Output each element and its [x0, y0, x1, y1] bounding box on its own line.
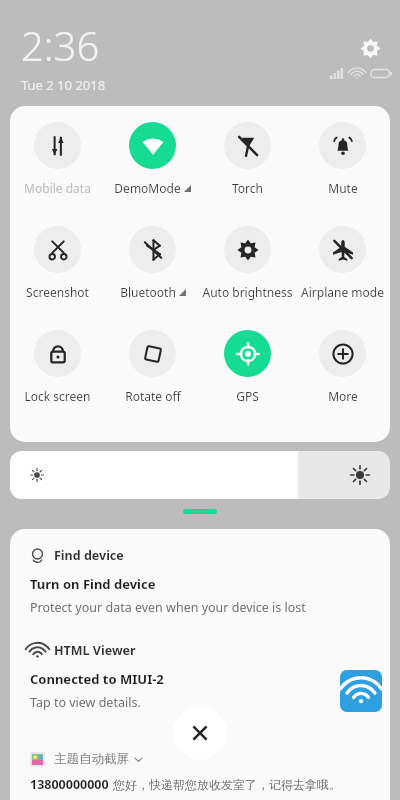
staticText: Connected to MIUI-2	[30, 670, 164, 688]
button[interactable]: Airplane mode	[295, 226, 390, 330]
staticText: 13800000000	[30, 776, 109, 793]
button[interactable]: Brightness	[10, 451, 390, 499]
staticText: 您好，快递帮您放收发室了，记得去拿哦。	[113, 777, 341, 792]
staticText: GPS	[236, 388, 259, 404]
staticText: Mobile data	[24, 180, 91, 196]
staticText: Turn on Find device	[30, 575, 156, 593]
staticText: DemoMode	[114, 180, 181, 196]
button[interactable]: Torch	[200, 122, 295, 226]
button[interactable]: Find device	[10, 529, 390, 616]
staticText: Find device	[54, 547, 124, 564]
staticText: Protect your data even when your device …	[30, 599, 306, 616]
staticText: Tap to view details.	[30, 694, 141, 711]
staticText: Torch	[232, 180, 263, 196]
button[interactable]: DemoMode	[105, 122, 200, 226]
button[interactable]: Mobile data	[10, 122, 105, 226]
button[interactable]: Screenshot	[10, 226, 105, 330]
staticText: More	[328, 388, 358, 404]
staticText: 主题自动截屏	[54, 751, 129, 767]
button[interactable]: Rotate off	[105, 330, 200, 434]
staticText: HTML Viewer	[54, 642, 136, 659]
button[interactable]: More	[295, 330, 390, 434]
staticText: Screenshot	[26, 284, 89, 300]
staticText: Auto brightness	[202, 284, 293, 300]
button[interactable]: Settings	[352, 30, 388, 66]
button[interactable]: GPS	[200, 330, 295, 434]
staticText: Bluetooth	[120, 284, 176, 300]
staticText: Lock screen	[24, 388, 91, 404]
button[interactable]: Clear all notifications	[173, 706, 227, 760]
button[interactable]: Bluetooth	[105, 226, 200, 330]
button[interactable]: HTML Viewer	[10, 642, 390, 711]
button[interactable]: Lock screen	[10, 330, 105, 434]
staticText: Airplane mode	[301, 284, 384, 300]
button[interactable]: Mute	[295, 122, 390, 226]
button[interactable]: 主题自动截屏	[10, 751, 390, 793]
button[interactable]: Auto brightness	[200, 226, 295, 330]
staticText: 2:36	[21, 18, 100, 72]
staticText: Tue 2 10 2018	[21, 76, 106, 94]
staticText: Mute	[328, 180, 358, 196]
staticText: Rotate off	[125, 388, 181, 404]
